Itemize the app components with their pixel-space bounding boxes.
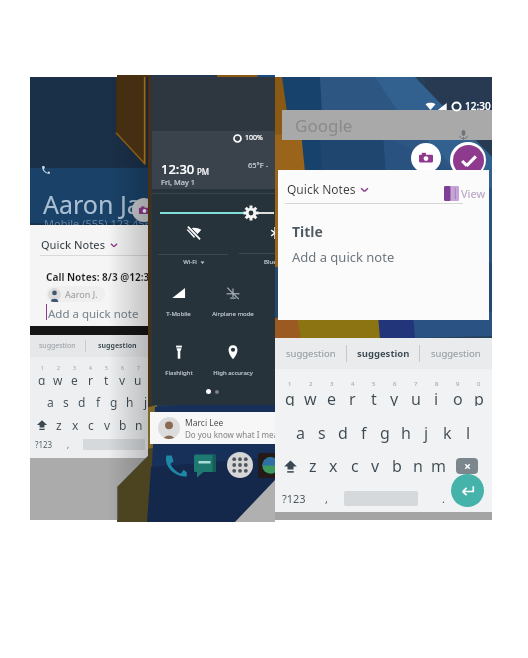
button[interactable]: Marci Lee [150, 412, 275, 444]
button[interactable]: Quick Notes [278, 170, 489, 320]
staticText: n [413, 455, 423, 477]
staticText: Google [295, 114, 353, 137]
button[interactable]: Quick Notes [30, 225, 148, 332]
button[interactable]: Camera [411, 143, 441, 173]
button[interactable]: v [99, 416, 115, 433]
button[interactable]: 1 [279, 380, 300, 406]
button[interactable]: 5 [363, 380, 384, 406]
button[interactable]: g [374, 422, 395, 444]
button[interactable]: Camera [258, 453, 275, 478]
button[interactable]: 4 [342, 380, 363, 406]
button[interactable]: Done [453, 145, 484, 176]
button[interactable]: Shift [33, 416, 51, 433]
button[interactable]: Wi-Fi [168, 225, 219, 266]
button[interactable]: 5 [98, 365, 114, 385]
staticText: u [411, 388, 421, 406]
button[interactable]: 7 [130, 365, 146, 385]
button[interactable]: Camera [132, 198, 148, 222]
button[interactable]: g [106, 393, 122, 410]
button[interactable]: 1 [34, 365, 50, 385]
button[interactable]: z [302, 455, 323, 477]
staticText: Do you know what I mean? [185, 429, 275, 440]
staticText: u [134, 372, 142, 385]
button[interactable]: 6 [384, 380, 405, 406]
button[interactable]: f [90, 393, 106, 410]
button[interactable]: Aaron J. [48, 286, 103, 302]
staticText: 100% [245, 133, 263, 143]
button[interactable]: j [138, 393, 148, 410]
button[interactable]: 9 [447, 380, 468, 406]
button[interactable]: suggestion [420, 338, 491, 369]
button[interactable]: suggestion [347, 338, 419, 369]
button[interactable]: Flashlight [153, 344, 204, 377]
button[interactable]: High accuracy [207, 344, 258, 377]
button[interactable]: View [444, 186, 486, 201]
button[interactable]: ?123 [282, 491, 306, 506]
button[interactable]: b [115, 416, 131, 433]
staticText: q [38, 372, 46, 385]
button[interactable]: Phone [163, 453, 187, 477]
button[interactable]: h [122, 393, 138, 410]
button[interactable]: d [74, 393, 90, 410]
button[interactable]: All apps [227, 452, 253, 478]
staticText: View [461, 186, 486, 201]
staticText: Wi-Fi [183, 258, 197, 266]
staticText: i [434, 388, 439, 406]
button[interactable]: suggestion [275, 338, 346, 369]
staticText: ?123 [35, 439, 53, 450]
button[interactable]: f [353, 422, 374, 444]
staticText: f [361, 422, 367, 444]
staticText: 8 [435, 380, 439, 388]
button[interactable]: 3 [66, 365, 82, 385]
button[interactable]: 6 [114, 365, 130, 385]
staticText: Mobile (555) 123 4567 [44, 216, 148, 231]
button[interactable]: 8 [426, 380, 447, 406]
staticText: 7 [414, 380, 418, 388]
button[interactable]: n [131, 416, 147, 433]
button[interactable]: 0 [468, 380, 489, 406]
button[interactable]: 4 [82, 365, 98, 385]
button[interactable]: Airplane mode [207, 285, 258, 318]
button[interactable]: c [83, 416, 99, 433]
button[interactable]: Google [282, 110, 492, 140]
button[interactable]: 2 [300, 380, 321, 406]
button[interactable]: Messages [194, 453, 219, 478]
button[interactable]: x [323, 455, 344, 477]
button[interactable]: 7 [405, 380, 426, 406]
staticText: 6 [121, 365, 124, 372]
button[interactable]: d [332, 422, 353, 444]
button[interactable]: s [58, 393, 74, 410]
button[interactable]: a [290, 422, 311, 444]
button[interactable]: c [344, 455, 365, 477]
button[interactable]: s [311, 422, 332, 444]
staticText: suggestion [431, 347, 481, 360]
staticText: x [329, 455, 338, 477]
button[interactable]: k [437, 422, 458, 444]
button[interactable]: 2 [50, 365, 66, 385]
button[interactable]: Enter [451, 474, 484, 507]
button[interactable]: z [51, 416, 67, 433]
staticText: suggestion [286, 347, 336, 360]
button[interactable]: Bluetoo [249, 225, 275, 266]
staticText: e [71, 372, 78, 385]
button[interactable]: Backspace [456, 458, 478, 474]
button[interactable]: m [428, 455, 449, 477]
staticText: suggestion [39, 341, 76, 351]
button[interactable]: a [42, 393, 58, 410]
staticText: g [380, 422, 390, 444]
button[interactable]: Shift [278, 455, 302, 477]
button[interactable]: h [395, 422, 416, 444]
button[interactable]: v [365, 455, 386, 477]
button[interactable]: j [416, 422, 437, 444]
button[interactable]: n [407, 455, 428, 477]
staticText: d [338, 422, 348, 444]
button[interactable]: x [67, 416, 83, 433]
staticText: 2 [57, 365, 60, 372]
button[interactable]: b [386, 455, 407, 477]
staticText: h [401, 422, 411, 444]
button[interactable]: l [458, 422, 479, 444]
staticText: 4 [89, 365, 92, 372]
button[interactable]: 3 [321, 380, 342, 406]
button[interactable]: T-Mobile [153, 285, 204, 318]
